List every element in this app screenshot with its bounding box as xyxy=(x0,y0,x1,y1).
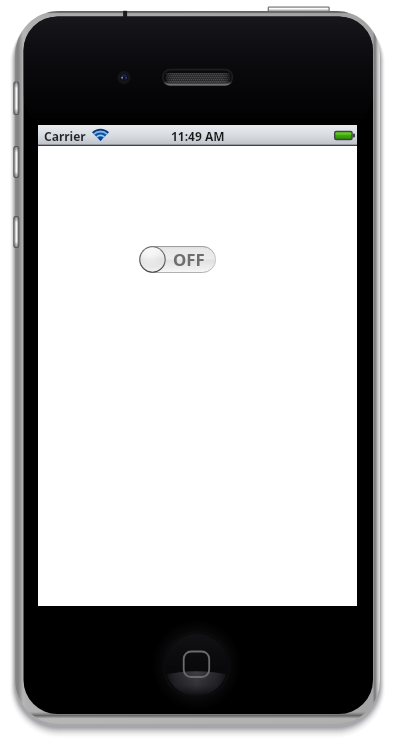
staticText: 11:49 AM xyxy=(171,128,225,144)
staticText: OFF xyxy=(173,248,205,271)
button[interactable]: Toggle switch, OFF xyxy=(139,246,216,273)
staticText: Carrier xyxy=(44,128,86,144)
